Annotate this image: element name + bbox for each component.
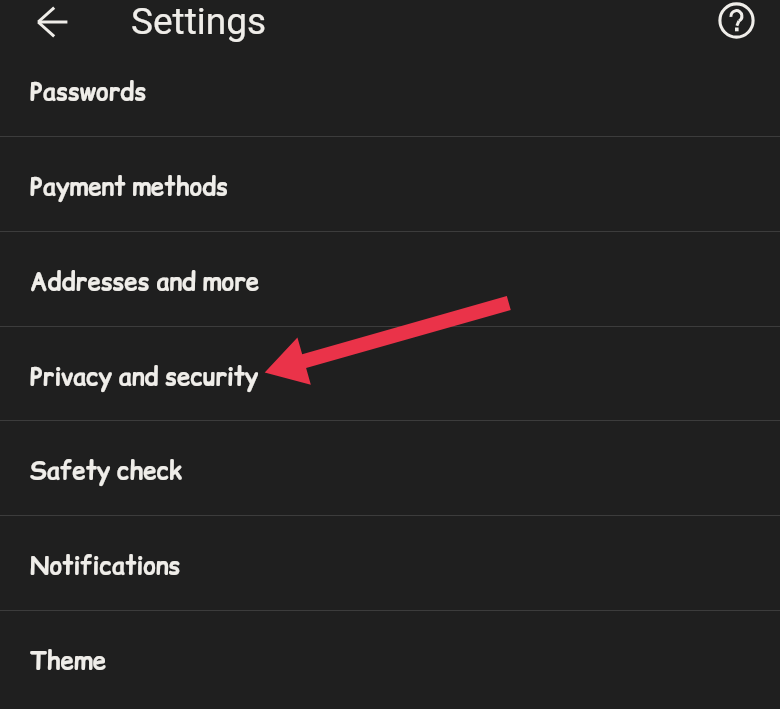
button[interactable]: Addresses and more — [0, 232, 780, 327]
button[interactable]: Payment methods — [0, 137, 780, 232]
staticText: Passwords — [30, 75, 147, 108]
button[interactable]: Notifications — [0, 516, 780, 611]
button[interactable]: Safety check — [0, 421, 780, 516]
button[interactable]: Privacy and security — [0, 327, 780, 421]
button[interactable]: Help — [713, 0, 759, 43]
button[interactable]: Back — [30, 0, 76, 44]
staticText: Notifications — [30, 549, 181, 582]
staticText: Privacy and security — [30, 360, 259, 393]
staticText: Addresses and more — [30, 265, 260, 298]
button[interactable]: Theme — [0, 611, 780, 706]
staticText: Payment methods — [30, 170, 229, 203]
staticText: Safety check — [30, 454, 183, 487]
button[interactable]: Passwords — [0, 45, 780, 137]
staticText: Theme — [30, 644, 107, 677]
staticText: Settings — [131, 0, 267, 43]
